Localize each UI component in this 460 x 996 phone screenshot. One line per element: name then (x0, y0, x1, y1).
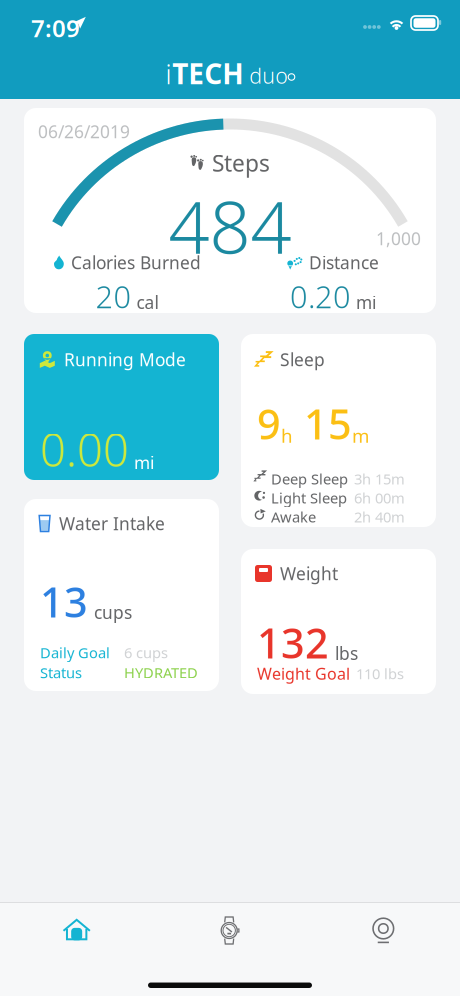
staticText: h (281, 423, 293, 448)
staticText: Sleep (280, 348, 325, 371)
staticText: 0.20 (290, 276, 351, 317)
staticText: 20 (95, 276, 131, 317)
staticText: 13 (40, 574, 88, 629)
staticText: Awake (271, 507, 316, 526)
staticText: Deep Sleep (271, 469, 348, 488)
staticText: 7:09 (31, 12, 80, 44)
staticText: 132 (257, 615, 329, 670)
staticText: Water Intake (59, 512, 165, 535)
staticText: Distance (309, 251, 379, 274)
staticText: duo (243, 61, 288, 90)
button[interactable]: Device (153, 903, 307, 958)
button[interactable]: Sleep (241, 334, 436, 527)
button[interactable]: Home (0, 903, 153, 958)
button[interactable]: Running Mode (24, 334, 219, 480)
button[interactable]: Settings (307, 903, 460, 958)
staticText: Running Mode (64, 348, 186, 371)
staticText: cups (94, 601, 132, 624)
staticText: cal (136, 291, 158, 314)
staticText: Weight Goal (257, 663, 350, 684)
staticText: Steps (212, 148, 270, 178)
staticText: i (165, 55, 172, 92)
staticText: 6h 00m (354, 488, 405, 507)
staticText: Light Sleep (271, 488, 347, 507)
staticText: mi (356, 291, 376, 314)
staticText: 0.00 (40, 419, 129, 479)
staticText: HYDRATED (124, 663, 198, 682)
staticText: Weight (280, 562, 338, 585)
staticText: lbs (335, 642, 358, 665)
staticText: 06/26/2019 (38, 120, 130, 143)
staticText: 1,000 (376, 227, 421, 250)
button[interactable]: Weight (241, 549, 436, 694)
staticText: Status (40, 663, 82, 682)
staticText: TECH (172, 55, 243, 92)
staticText: m (352, 423, 369, 448)
staticText: 3h 15m (354, 469, 405, 488)
staticText: 110 lbs (356, 664, 404, 683)
staticText: 2h 40m (354, 507, 405, 526)
staticText: 9 (257, 396, 281, 451)
button[interactable]: Water Intake (24, 499, 219, 691)
staticText: 15 (293, 396, 352, 451)
button[interactable]: 06/26/2019 (24, 108, 436, 313)
staticText: 6 cups (124, 643, 168, 662)
staticText: Daily Goal (40, 643, 110, 662)
staticText: 484 (168, 178, 291, 274)
staticText: Calories Burned (71, 251, 201, 274)
staticText: mi (134, 451, 154, 474)
